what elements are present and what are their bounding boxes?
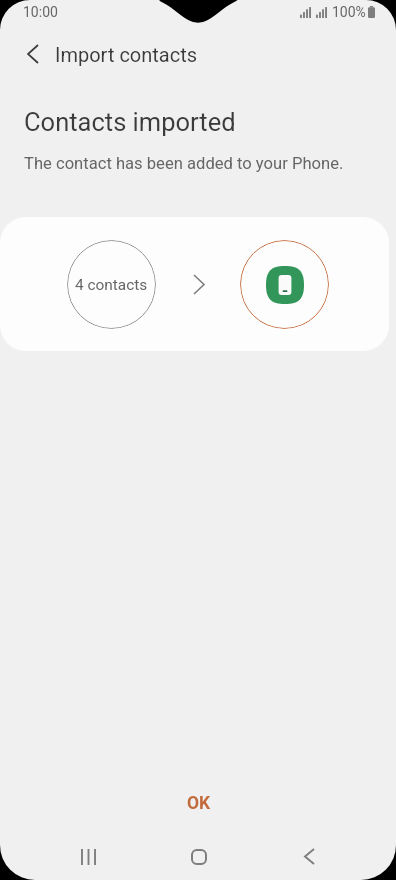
staticText: The contact has been added to your Phone… [24,154,344,173]
button[interactable]: Back [13,34,53,74]
staticText: OK [187,793,211,814]
staticText: 4 contacts [75,276,148,294]
button[interactable] [240,240,329,329]
button[interactable]: Home [165,833,233,880]
staticText: 10:00 [23,4,58,20]
staticText: Contacts imported [24,107,236,137]
staticText: 100% [332,4,366,20]
button[interactable]: Recent apps [54,833,122,880]
staticText: Import contacts [55,43,198,66]
button[interactable]: OK [1,782,396,824]
button[interactable]: Back [275,833,343,880]
button[interactable]: 4 contacts [67,240,156,329]
